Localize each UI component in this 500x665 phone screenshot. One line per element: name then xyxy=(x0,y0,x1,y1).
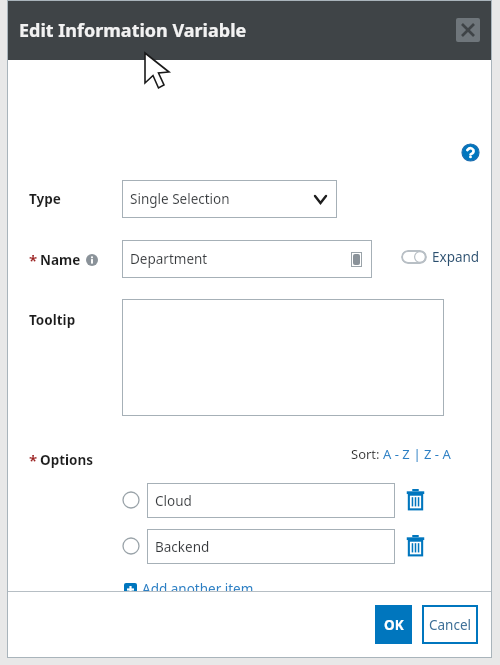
staticText: Department xyxy=(130,250,208,268)
staticText: Edit Information Variable xyxy=(19,18,247,43)
staticText: * xyxy=(29,450,38,470)
staticText: Options xyxy=(40,451,94,469)
button[interactable]: Expand xyxy=(401,248,480,266)
button[interactable]: Cancel xyxy=(422,605,478,644)
staticText: Add another item xyxy=(142,580,254,598)
button[interactable]: Department xyxy=(122,240,372,278)
button[interactable]: Help xyxy=(462,144,479,161)
staticText: Tooltip xyxy=(29,311,76,329)
staticText: Z - A xyxy=(424,445,451,463)
button[interactable]: Z - A xyxy=(424,445,451,463)
button[interactable] xyxy=(122,299,444,416)
button[interactable]: Add another item xyxy=(124,580,254,598)
button[interactable]: Select Backend xyxy=(122,537,140,555)
staticText: Name xyxy=(40,251,81,269)
button[interactable]: Delete Cloud xyxy=(406,489,425,510)
staticText: A - Z xyxy=(383,445,410,463)
staticText: Backend xyxy=(155,538,210,556)
button[interactable]: Delete Backend xyxy=(406,535,425,556)
staticText: Expand xyxy=(432,248,480,266)
button[interactable]: Cloud xyxy=(147,483,395,518)
button[interactable]: OK xyxy=(375,605,412,644)
button[interactable]: Single Selection xyxy=(122,180,337,218)
button[interactable]: Backend xyxy=(147,529,395,564)
button[interactable]: Select Cloud xyxy=(122,491,140,509)
staticText: * xyxy=(29,250,38,270)
staticText: Sort: xyxy=(351,445,383,463)
staticText: | xyxy=(410,445,424,463)
staticText: Cancel xyxy=(429,616,472,634)
staticText: OK xyxy=(384,616,404,634)
staticText: Type xyxy=(29,190,61,208)
button[interactable]: A - Z xyxy=(383,445,410,463)
staticText: Single Selection xyxy=(130,190,230,208)
button[interactable]: Close xyxy=(456,18,480,42)
staticText: Cloud xyxy=(155,492,192,510)
